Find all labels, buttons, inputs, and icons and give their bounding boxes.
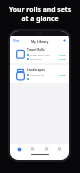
staticText: Active: [59, 57, 66, 60]
staticText: Your rolls and sets at a glance: [0, 5, 80, 23]
staticText: Velvia 50 set: [30, 73, 44, 76]
button[interactable]: Scan: [42, 145, 51, 154]
staticText: Ilford HP5: [30, 57, 42, 60]
staticText: My Library: [31, 39, 49, 43]
button[interactable]: Rolls: [28, 145, 37, 154]
button[interactable]: Landscapes: [10, 65, 69, 83]
button[interactable]: Filter: [13, 39, 20, 43]
button[interactable]: Add: [63, 39, 66, 42]
button[interactable]: Profile: [55, 145, 64, 154]
button[interactable]: Library: [15, 145, 24, 154]
staticText: Active: [59, 53, 66, 56]
staticText: Travel Rolls: [27, 48, 45, 52]
staticText: Landscapes: [27, 68, 45, 72]
staticText: Kodak Portra 400: [30, 53, 50, 56]
button[interactable]: Travel Rolls: [10, 45, 69, 63]
staticText: Active: [59, 73, 66, 76]
